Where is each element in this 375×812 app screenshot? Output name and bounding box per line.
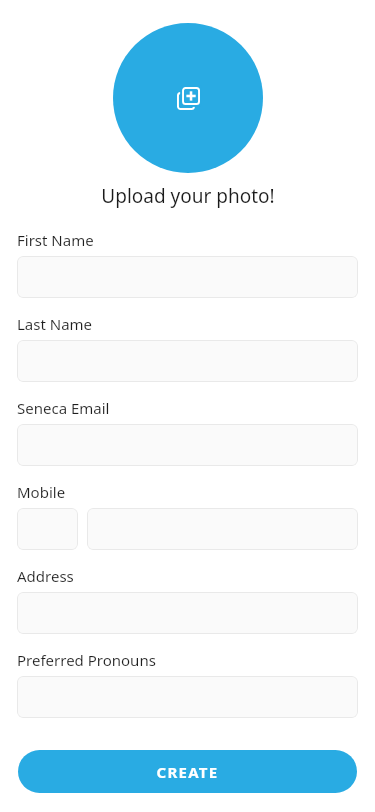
- staticText: Address: [17, 566, 74, 586]
- staticText: Seneca Email: [17, 398, 110, 418]
- button[interactable]: [17, 424, 358, 466]
- button[interactable]: [17, 676, 358, 718]
- button[interactable]: CREATE: [18, 750, 357, 793]
- staticText: First Name: [17, 230, 94, 250]
- button[interactable]: [17, 592, 358, 634]
- staticText: Preferred Pronouns: [17, 650, 156, 670]
- staticText: Mobile: [17, 482, 66, 502]
- button[interactable]: [17, 256, 358, 298]
- button[interactable]: [17, 508, 78, 550]
- button[interactable]: [87, 508, 358, 550]
- staticText: Upload your photo!: [101, 183, 275, 209]
- button[interactable]: [17, 340, 358, 382]
- staticText: Last Name: [17, 314, 93, 334]
- staticText: CREATE: [156, 762, 219, 782]
- button[interactable]: Upload your photo: [113, 23, 263, 173]
